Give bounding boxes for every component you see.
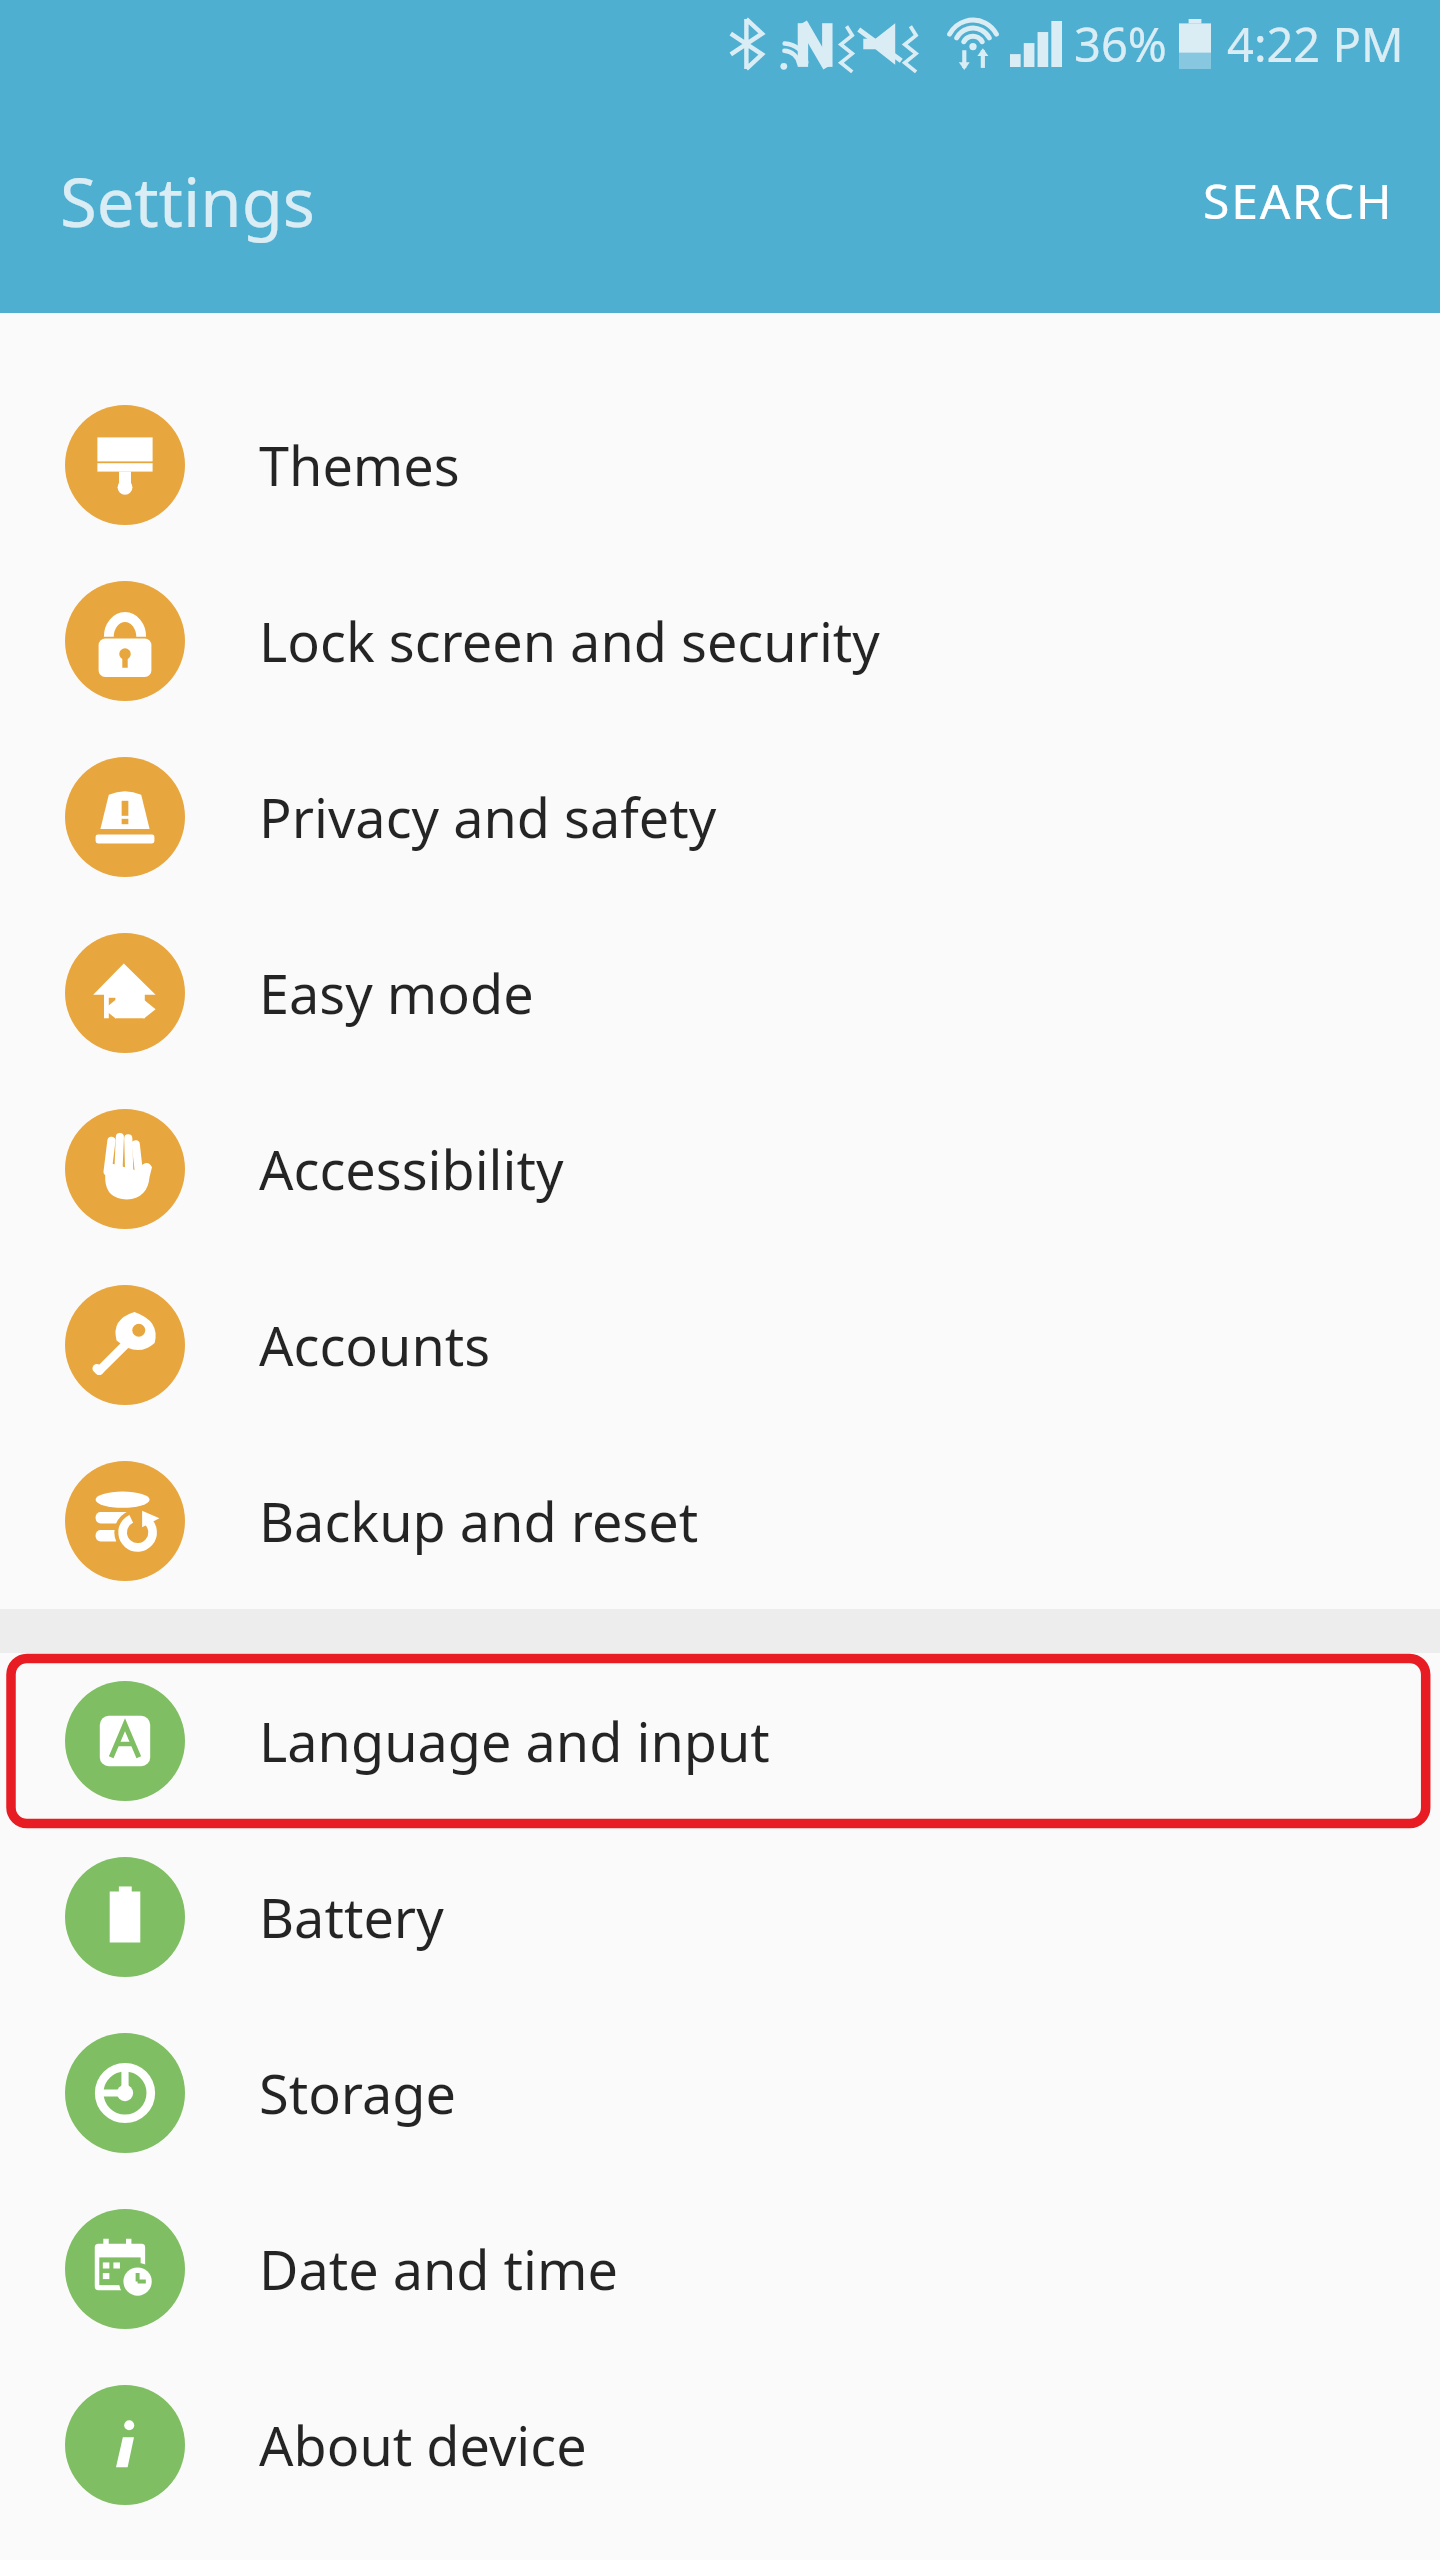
button[interactable]: Lock screen and security [0, 553, 1440, 729]
button[interactable]: Privacy and safety [0, 729, 1440, 905]
button[interactable]: Easy mode [0, 905, 1440, 1081]
button[interactable]: Accessibility [0, 1081, 1440, 1257]
staticText: Backup and reset [259, 1484, 699, 1558]
button[interactable]: Accounts [0, 1257, 1440, 1433]
button[interactable]: Backup and reset [0, 1433, 1440, 1609]
staticText: Language and input [259, 1704, 770, 1778]
staticText: Accessibility [259, 1132, 564, 1206]
button[interactable]: SEARCH [1157, 126, 1440, 275]
staticText: 36% [1074, 12, 1167, 76]
staticText: Settings [60, 155, 315, 246]
button[interactable]: About device [0, 2357, 1440, 2533]
staticText: Privacy and safety [259, 780, 717, 854]
staticText: Easy mode [259, 956, 534, 1030]
staticText: About device [259, 2408, 587, 2482]
staticText: Date and time [259, 2232, 618, 2306]
staticText: Lock screen and security [259, 604, 880, 678]
button[interactable]: Battery [0, 1829, 1440, 2005]
button[interactable]: Themes [0, 377, 1440, 553]
button[interactable]: Storage [0, 2005, 1440, 2181]
staticText: Storage [259, 2056, 456, 2130]
button[interactable]: Language and input [0, 1653, 1440, 1829]
staticText: Battery [259, 1880, 444, 1954]
staticText: Accounts [259, 1308, 491, 1382]
staticText: 4:22 PM [1227, 12, 1404, 76]
staticText: Themes [259, 428, 460, 502]
staticText: SEARCH [1203, 168, 1394, 233]
button[interactable]: Date and time [0, 2181, 1440, 2357]
